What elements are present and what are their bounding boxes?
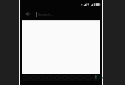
button[interactable] — [22, 20, 100, 74]
button[interactable]: Keyboard — [22, 75, 100, 81]
button[interactable]: Navigate back — [20, 8, 102, 20]
button[interactable]: Navigate back — [23, 9, 33, 19]
staticText: Search... — [38, 12, 54, 17]
